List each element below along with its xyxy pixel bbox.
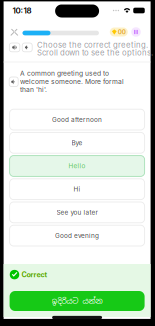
button[interactable]: ඉදිරියට යන්න [10, 291, 145, 311]
staticText: Bye [72, 139, 83, 147]
staticText: 00 [118, 28, 126, 36]
staticText: A common greeting used to [20, 69, 109, 77]
staticText: 10:18 [12, 6, 31, 15]
button[interactable]: Good evening [10, 225, 145, 246]
staticText: than 'hi'. [20, 86, 47, 94]
button[interactable]: Close [10, 29, 18, 37]
staticText: Hello [69, 162, 86, 170]
staticText: welcome someone. More formal [20, 77, 124, 86]
button[interactable]: Good afternoon [10, 109, 145, 130]
staticText: Choose the correct greeting. [37, 40, 148, 50]
button[interactable]: Play audio slowly [22, 43, 32, 52]
button[interactable]: See you later [10, 202, 145, 223]
staticText: See you later [57, 208, 98, 216]
staticText: ඉදිරියට යන්න [52, 296, 103, 306]
staticText: Good evening [55, 232, 99, 239]
button[interactable]: Play audio [9, 43, 20, 52]
staticText: Correct [21, 270, 47, 279]
button[interactable]: Hi [10, 179, 145, 200]
staticText: Hi [74, 185, 81, 193]
staticText: Scroll down to see the options. [37, 48, 153, 57]
button[interactable]: Hello [10, 156, 145, 176]
button[interactable]: Play hint audio [9, 77, 18, 87]
staticText: Good afternoon [52, 116, 102, 123]
button[interactable]: Practice [131, 27, 141, 37]
button[interactable]: Gems [110, 27, 128, 36]
button[interactable]: Bye [10, 132, 145, 153]
